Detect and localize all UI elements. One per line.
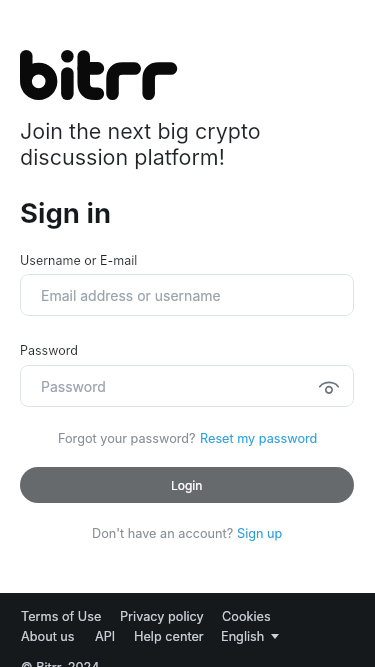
other: Bitrr logo xyxy=(20,50,176,100)
staticText: Don't have an account? xyxy=(92,526,237,541)
staticText: API xyxy=(95,629,116,644)
staticText: Privacy policy xyxy=(120,609,204,624)
staticText: Join the next big crypto discussion plat… xyxy=(20,118,261,170)
staticText: About us xyxy=(21,629,75,644)
button[interactable]: API xyxy=(95,629,116,644)
staticText: Password xyxy=(41,378,106,395)
staticText: Login xyxy=(171,478,203,493)
staticText: © Bitrr, 2024 xyxy=(21,660,100,667)
staticText: Help center xyxy=(134,629,204,644)
button[interactable]: Login xyxy=(20,467,354,503)
button[interactable]: Terms of Use xyxy=(21,609,102,624)
button[interactable]: Reset my password xyxy=(200,431,318,446)
staticText: Forgot your password? xyxy=(58,431,200,446)
staticText: English xyxy=(221,629,265,644)
staticText: Email address or username xyxy=(41,287,221,304)
button[interactable]: Cookies xyxy=(222,609,271,624)
staticText: Password xyxy=(20,343,78,358)
staticText: Username or E-mail xyxy=(20,253,138,268)
staticText: Terms of Use xyxy=(21,609,102,624)
button[interactable]: English xyxy=(221,629,279,644)
staticText: Cookies xyxy=(222,609,271,624)
button[interactable]: About us xyxy=(21,629,75,644)
button[interactable]: Password xyxy=(20,365,354,407)
button[interactable]: Privacy policy xyxy=(120,609,204,624)
button[interactable]: Email address or username xyxy=(20,274,354,316)
button[interactable]: Sign up xyxy=(237,526,283,541)
button[interactable]: Help center xyxy=(134,629,204,644)
staticText: Sign in xyxy=(20,196,112,229)
button[interactable]: Show password xyxy=(318,377,340,399)
